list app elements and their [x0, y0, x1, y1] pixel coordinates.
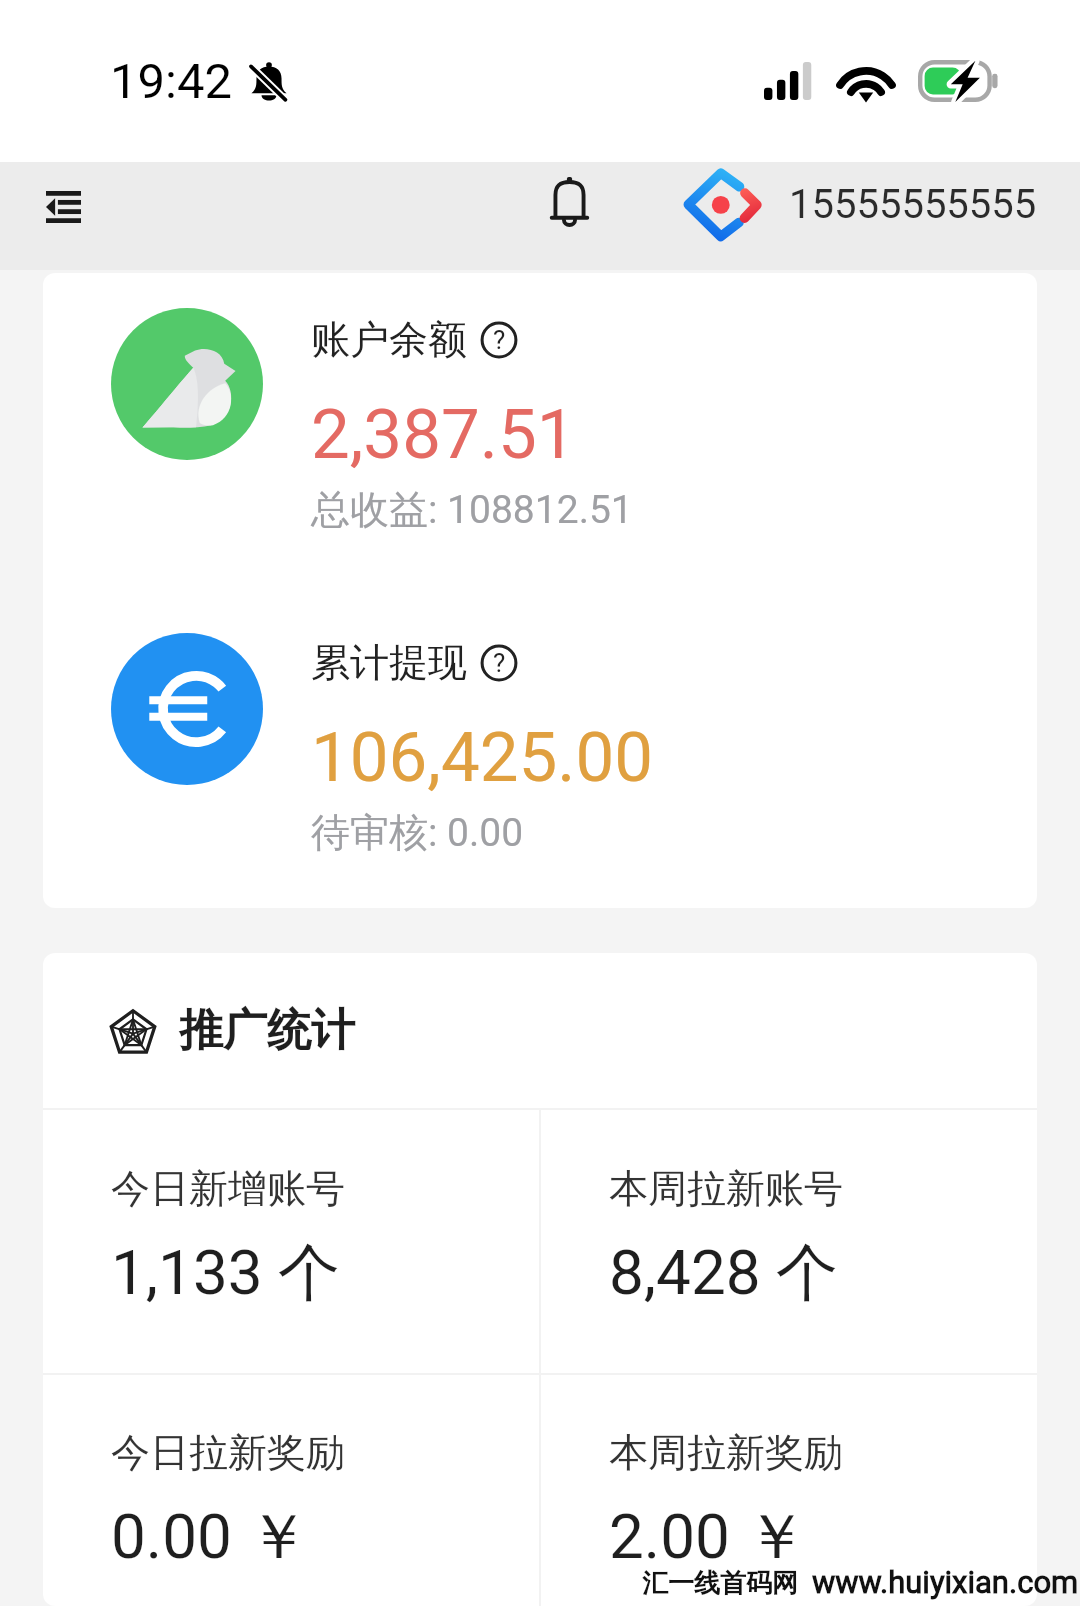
staticText: ?	[493, 325, 506, 355]
staticText: ?	[493, 648, 506, 678]
button[interactable]: 15555555555	[683, 162, 1037, 246]
staticText: 8,428 个	[609, 1234, 838, 1312]
staticText: 1,133 个	[111, 1234, 340, 1312]
button[interactable]: Menu	[27, 168, 99, 246]
staticText: 本周拉新账号	[609, 1164, 843, 1213]
staticText: 推广统计	[179, 1003, 355, 1058]
staticText: www.huiyixian.com	[812, 1564, 1079, 1600]
staticText: 待审核: 0.00	[311, 808, 524, 857]
staticText: 19:42	[110, 53, 233, 110]
button[interactable]: 本周拉新奖励	[541, 1375, 1037, 1606]
staticText: 106,425.00	[311, 717, 654, 798]
staticText: 今日拉新奖励	[111, 1428, 345, 1477]
staticText: 总收益: 108812.51	[311, 485, 633, 534]
button[interactable]: 今日拉新奖励	[43, 1375, 539, 1606]
staticText: 本周拉新奖励	[609, 1428, 843, 1477]
staticText: 累计提现	[311, 638, 467, 687]
staticText: 汇一线首码网	[642, 1567, 798, 1600]
button[interactable]: 账户余额	[43, 293, 1037, 563]
button[interactable]: 今日新增账号	[43, 1110, 539, 1373]
staticText: 2,387.51	[311, 394, 576, 475]
staticText: 0.00 ￥	[111, 1498, 310, 1576]
button[interactable]: 累计提现	[43, 618, 1037, 888]
staticText: 2.00 ￥	[609, 1498, 808, 1576]
button[interactable]: Notifications	[527, 160, 611, 244]
staticText: 15555555555	[789, 181, 1037, 228]
staticText: 今日新增账号	[111, 1164, 345, 1213]
button[interactable]: 本周拉新账号	[541, 1110, 1037, 1373]
staticText: 账户余额	[311, 315, 467, 364]
